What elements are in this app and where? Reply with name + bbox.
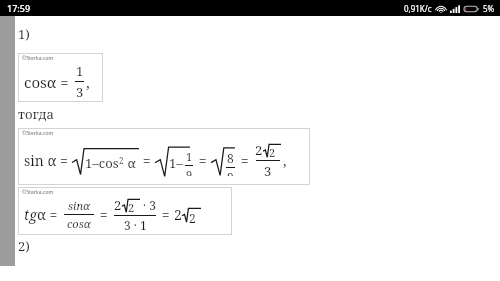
- staticText: =: [96, 205, 112, 224]
- staticText: =: [195, 151, 211, 170]
- staticText: ©5terka.com: [22, 189, 54, 196]
- button[interactable]: ©5terka.com: [18, 53, 103, 102]
- staticText: =: [158, 205, 174, 224]
- staticText: ,: [86, 72, 90, 92]
- staticText: 2: [114, 196, 122, 214]
- staticText: · 3: [140, 197, 156, 213]
- staticText: =: [139, 151, 155, 170]
- button[interactable]: ©5terka.com: [18, 187, 232, 235]
- staticText: ©5terka.com: [22, 130, 54, 137]
- staticText: tg: [24, 205, 37, 224]
- staticText: 3: [264, 162, 272, 180]
- staticText: 9: [186, 167, 193, 176]
- staticText: 17:59: [7, 2, 31, 14]
- staticText: 2: [269, 145, 276, 157]
- staticText: 2: [189, 210, 196, 223]
- staticText: sin α =: [24, 151, 72, 170]
- staticText: α: [124, 154, 136, 172]
- staticText: cosα: [67, 216, 91, 231]
- staticText: 1–: [169, 154, 183, 172]
- staticText: 9: [227, 169, 234, 176]
- staticText: 1): [18, 25, 30, 43]
- staticText: 5%: [483, 3, 495, 14]
- staticText: 8: [227, 150, 234, 166]
- staticText: 0,91K/c: [404, 3, 432, 14]
- staticText: 3: [76, 83, 84, 101]
- staticText: 2: [128, 200, 135, 212]
- staticText: ,: [283, 151, 287, 170]
- button[interactable]: ©5terka.com: [18, 128, 310, 185]
- staticText: 2: [255, 141, 263, 159]
- staticText: 1: [186, 149, 193, 164]
- staticText: sinα: [68, 198, 91, 213]
- staticText: тогда: [18, 105, 55, 123]
- staticText: 2): [18, 237, 30, 255]
- staticText: ©5terka.com: [22, 55, 54, 62]
- staticText: 2: [119, 155, 124, 166]
- staticText: 1: [76, 62, 84, 80]
- staticText: cosα =: [24, 72, 73, 92]
- staticText: 1–cos: [85, 154, 119, 172]
- staticText: =: [237, 151, 253, 170]
- staticText: 3 · 1: [124, 217, 147, 233]
- staticText: 2: [174, 205, 182, 224]
- staticText: α =: [37, 205, 62, 224]
